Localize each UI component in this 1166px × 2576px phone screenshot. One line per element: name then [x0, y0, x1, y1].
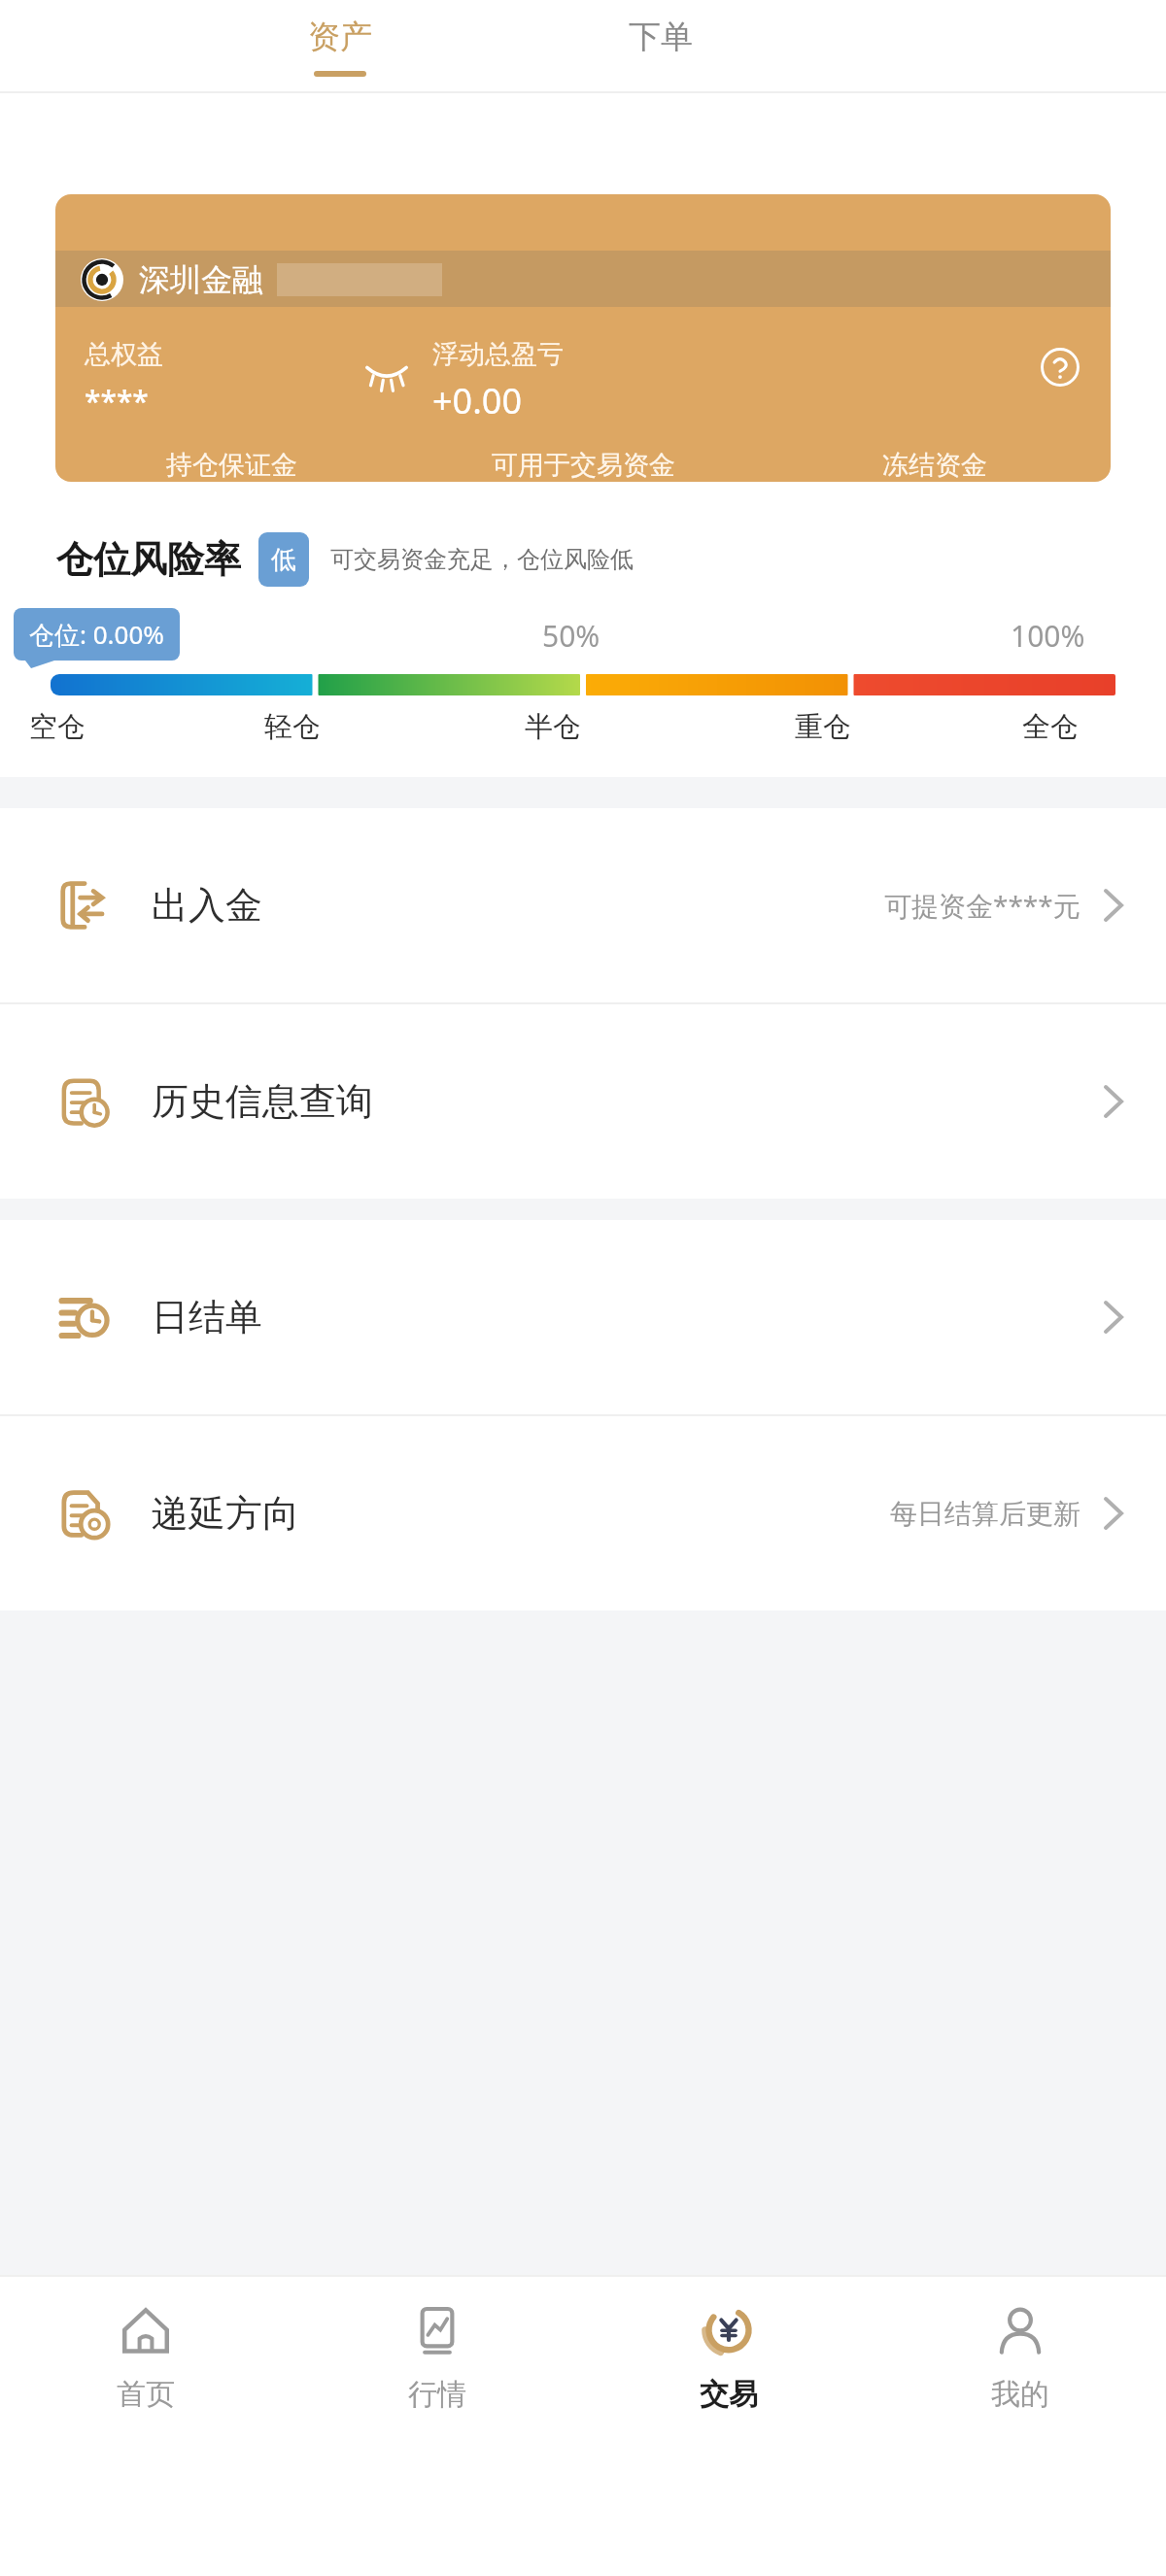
staticText: +0.00: [432, 377, 523, 424]
staticText: 历史信息查询: [152, 1078, 373, 1125]
staticText: 下单: [629, 17, 693, 57]
staticText: 50%: [542, 616, 600, 656]
staticText: 可提资金****元: [884, 887, 1080, 924]
button[interactable]: 帮助: [1033, 340, 1087, 394]
button[interactable]: 下单: [578, 0, 743, 93]
staticText: 资产: [308, 17, 372, 57]
staticText: 半仓: [525, 709, 581, 745]
staticText: 浮动总盈亏: [432, 338, 564, 371]
staticText: 轻仓: [264, 709, 321, 745]
staticText: 我的: [991, 2376, 1049, 2413]
staticText: 首页: [117, 2376, 175, 2413]
button[interactable]: 行情: [291, 2277, 583, 2576]
staticText: 行情: [408, 2376, 466, 2413]
staticText: 重仓: [795, 709, 851, 745]
staticText: 全仓: [1022, 709, 1079, 745]
button[interactable]: 首页: [0, 2277, 291, 2576]
button[interactable]: 递延方向: [0, 1416, 1166, 1610]
staticText: 仓位: 0.00%: [29, 617, 164, 652]
staticText: ****: [85, 381, 149, 421]
button[interactable]: 历史信息查询: [0, 1004, 1166, 1199]
staticText: 冻结资金: [882, 449, 987, 482]
staticText: 可用于交易资金: [492, 449, 675, 482]
staticText: 低: [271, 544, 296, 576]
staticText: 可交易资金充足，仓位风险低: [330, 545, 634, 574]
button[interactable]: 显示/隐藏金额: [357, 342, 417, 402]
staticText: 交易: [700, 2376, 758, 2413]
staticText: 总权益: [85, 338, 163, 371]
staticText: 仓位风险率: [56, 536, 241, 583]
staticText: 深圳金融: [139, 260, 263, 299]
staticText: 每日结算后更新: [890, 1497, 1080, 1531]
button[interactable]: 资产: [257, 0, 423, 93]
button[interactable]: 交易: [583, 2277, 874, 2576]
staticText: 100%: [1011, 616, 1085, 656]
button[interactable]: 深圳金融: [55, 194, 1111, 482]
staticText: 出入金: [152, 882, 262, 929]
staticText: 空仓: [29, 709, 86, 745]
button[interactable]: 日结单: [0, 1220, 1166, 1414]
button[interactable]: 出入金: [0, 808, 1166, 1002]
staticText: 持仓保证金: [166, 449, 297, 482]
staticText: 递延方向: [152, 1490, 299, 1537]
button[interactable]: 我的: [874, 2277, 1166, 2576]
staticText: 日结单: [152, 1294, 262, 1340]
